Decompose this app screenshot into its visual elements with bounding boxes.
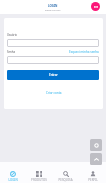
staticText: PERFIL (88, 178, 98, 182)
staticText: Entrar (49, 73, 58, 77)
button[interactable]: Criar conta (46, 91, 62, 95)
button[interactable]: PERFIL (79, 162, 106, 183)
staticText: PRODUTOS (31, 178, 47, 182)
staticText: LOGIN (8, 178, 18, 182)
button[interactable]: Refresh (90, 139, 102, 151)
button[interactable]: Entrar (7, 70, 99, 80)
staticText: PESQUISA (58, 178, 73, 182)
button[interactable]: Scroll to top (90, 153, 102, 165)
button[interactable]: Account (91, 2, 100, 11)
button[interactable]: PRODUTOS (26, 162, 52, 183)
staticText: Usuário (7, 33, 18, 37)
staticText: Senha (7, 50, 15, 54)
button[interactable]: Esqueci minha senha (69, 50, 99, 54)
button[interactable]: PESQUISA (52, 162, 79, 183)
staticText: LOGIN (48, 4, 58, 8)
button[interactable] (7, 56, 99, 64)
staticText: acesse sua conta (45, 9, 61, 12)
staticText: Criar conta (46, 91, 62, 95)
button[interactable]: LOGIN (0, 162, 26, 183)
button[interactable] (7, 39, 99, 47)
staticText: Esqueci minha senha (69, 50, 99, 54)
